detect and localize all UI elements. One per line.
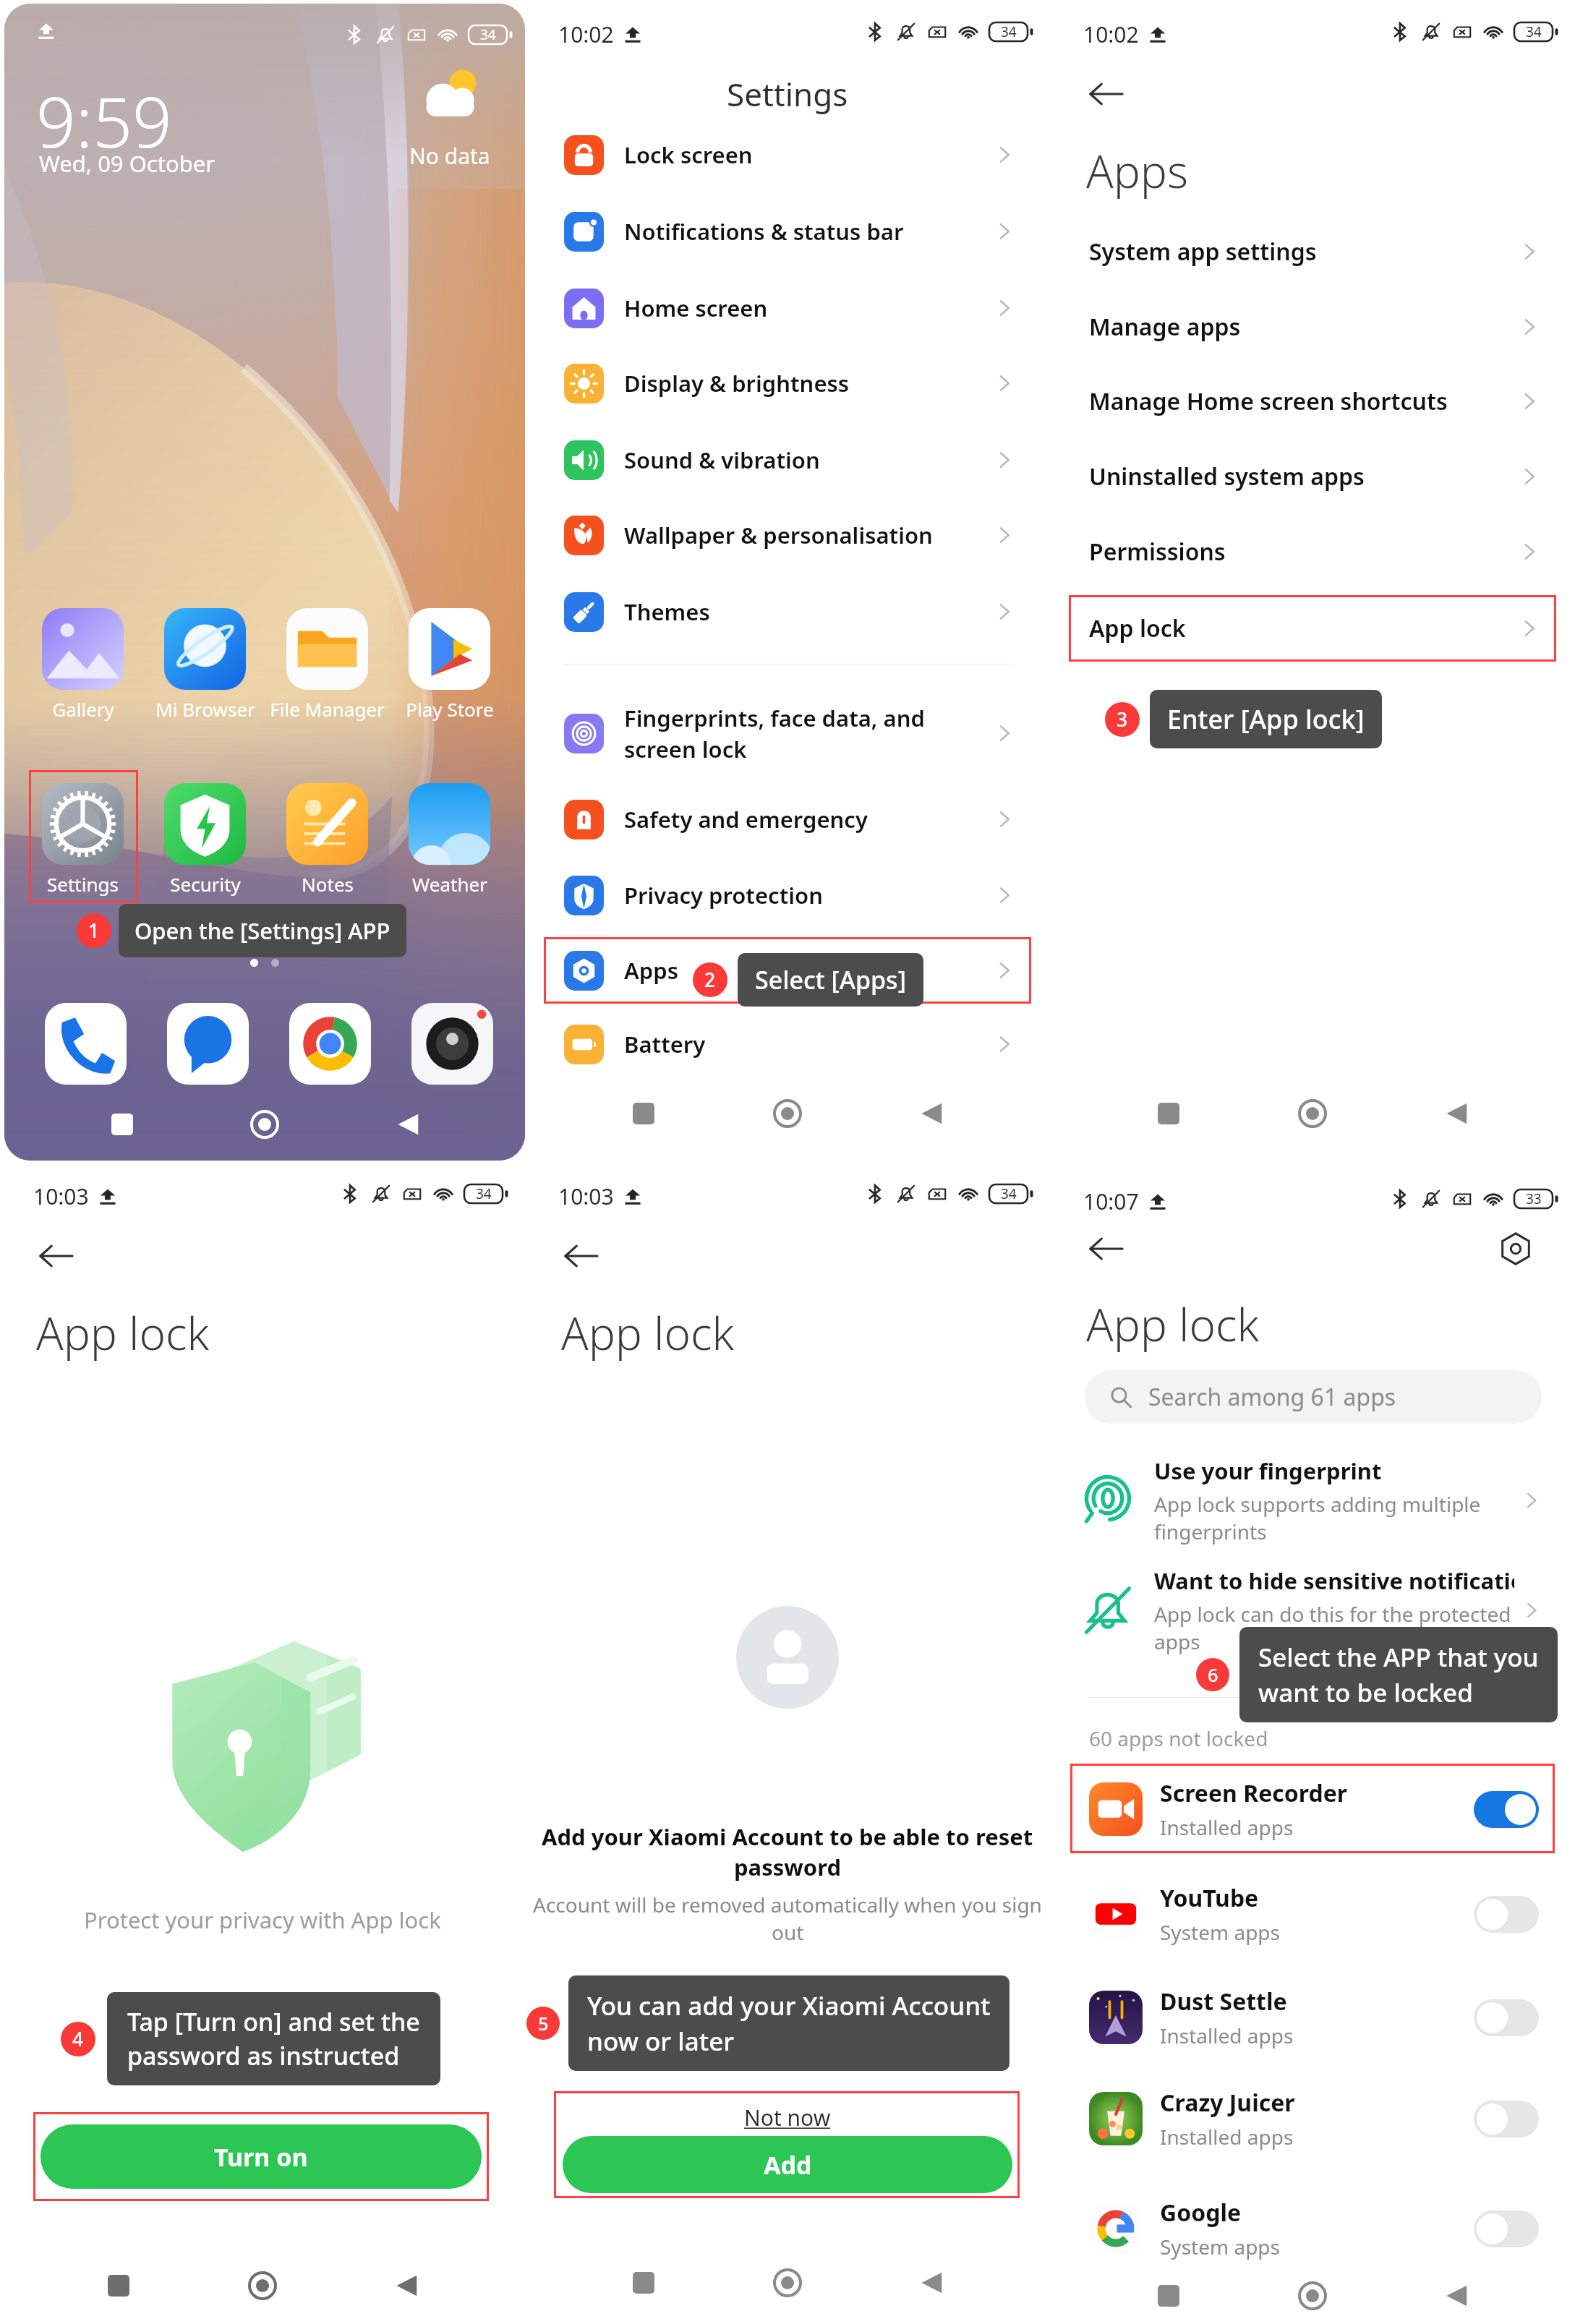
staticText: Protect your privacy with App lock bbox=[84, 1905, 441, 1935]
staticText: Open the [Settings] APP bbox=[135, 915, 390, 946]
staticText: App lock bbox=[36, 1302, 210, 1363]
staticText: 10:07 bbox=[1083, 1187, 1139, 1216]
button[interactable]: Back bbox=[558, 1233, 605, 1279]
button[interactable] bbox=[164, 608, 246, 690]
staticText: Screen Recorder bbox=[1160, 1777, 1348, 1809]
button[interactable]: Turn on bbox=[40, 2124, 482, 2189]
button[interactable]: Want to hide sensitive notification bbox=[1050, 1558, 1575, 1662]
staticText: 9:59 bbox=[36, 73, 172, 168]
button[interactable]: Privacy protection bbox=[525, 862, 1050, 928]
staticText: Add your Xiaomi Account to be able to re… bbox=[542, 1821, 1033, 1852]
staticText: 1 bbox=[88, 918, 100, 944]
button[interactable] bbox=[409, 783, 490, 865]
button[interactable]: Recents bbox=[1143, 1088, 1194, 1139]
staticText: Tap [Turn on] and set the password as in… bbox=[127, 2005, 420, 2072]
staticText: Uninstalled system apps bbox=[1089, 461, 1365, 492]
button[interactable]: Fingerprints, face data, and screen lock bbox=[525, 693, 1050, 774]
staticText: 4 bbox=[72, 2026, 84, 2052]
button[interactable]: Crazy Juicer bbox=[1050, 2074, 1575, 2163]
button[interactable]: Wallpaper & personalisation bbox=[525, 502, 1050, 568]
button[interactable]: Back bbox=[1431, 1088, 1482, 1139]
button[interactable]: Recents bbox=[97, 1099, 148, 1150]
button[interactable]: Toggle Screen Recorder bbox=[1474, 1791, 1539, 1828]
button[interactable]: Toggle Google bbox=[1474, 2210, 1539, 2247]
staticText: Installed apps bbox=[1160, 2123, 1294, 2150]
staticText: You can add your Xiaomi Account now or l… bbox=[587, 1988, 991, 2058]
staticText: Turn on bbox=[214, 2140, 308, 2174]
button[interactable]: Home bbox=[237, 2260, 288, 2311]
button[interactable]: App bbox=[167, 1003, 249, 1085]
button[interactable]: App lock bbox=[1050, 595, 1575, 662]
button[interactable] bbox=[164, 783, 246, 865]
staticText: App lock supports adding multiple finger… bbox=[1154, 1490, 1481, 1545]
button[interactable]: App bbox=[45, 1003, 127, 1085]
button[interactable]: App bbox=[411, 1003, 493, 1085]
button[interactable] bbox=[409, 608, 490, 690]
staticText: 10:03 bbox=[33, 1182, 89, 1211]
button[interactable]: Back bbox=[906, 1088, 957, 1139]
staticText: Installed apps bbox=[1160, 1814, 1294, 1841]
button[interactable]: Back bbox=[1431, 2270, 1482, 2321]
button[interactable]: Back bbox=[381, 2260, 432, 2311]
button[interactable] bbox=[286, 783, 368, 865]
button[interactable]: Not now bbox=[730, 2100, 845, 2135]
button[interactable]: Settings bbox=[1493, 1226, 1539, 1272]
button[interactable]: Home bbox=[762, 2257, 813, 2308]
button[interactable] bbox=[42, 608, 124, 690]
staticText: 60 apps not locked bbox=[1089, 1725, 1268, 1752]
button[interactable]: Battery bbox=[525, 1011, 1050, 1077]
button[interactable]: Back bbox=[1083, 1226, 1130, 1272]
staticText: Crazy Juicer bbox=[1160, 2087, 1295, 2119]
staticText: System apps bbox=[1160, 2233, 1280, 2260]
button[interactable]: Display & brightness bbox=[525, 350, 1050, 416]
staticText: 34 bbox=[1001, 22, 1017, 41]
staticText: 34 bbox=[480, 25, 496, 44]
staticText: Google bbox=[1160, 2197, 1242, 2229]
button[interactable]: Recents bbox=[1143, 2270, 1194, 2321]
button[interactable]: Search among 61 apps bbox=[1085, 1370, 1542, 1424]
button[interactable]: Recents bbox=[93, 2260, 144, 2311]
button[interactable]: Back bbox=[906, 2257, 957, 2308]
button[interactable]: Uninstalled system apps bbox=[1050, 443, 1575, 510]
button[interactable]: Home bbox=[239, 1099, 290, 1150]
staticText: Not now bbox=[744, 2103, 831, 2132]
button[interactable]: Add bbox=[563, 2136, 1012, 2193]
button[interactable]: YouTube bbox=[1050, 1869, 1575, 1959]
button[interactable]: Manage Home screen shortcuts bbox=[1050, 368, 1575, 435]
staticText: 34 bbox=[1526, 22, 1542, 41]
button[interactable]: Recents bbox=[618, 1088, 669, 1139]
button[interactable]: Notifications & status bar bbox=[525, 198, 1050, 265]
button[interactable]: Apps bbox=[525, 937, 1050, 1004]
button[interactable]: Manage apps bbox=[1050, 294, 1575, 360]
button[interactable]: Google bbox=[1050, 2184, 1575, 2273]
button[interactable]: Home bbox=[1287, 2270, 1338, 2321]
button[interactable]: Dust Settle bbox=[1050, 1973, 1575, 2062]
button[interactable]: App bbox=[289, 1003, 371, 1085]
staticText: System apps bbox=[1160, 1918, 1280, 1946]
button[interactable] bbox=[286, 608, 368, 690]
button[interactable]: Back bbox=[383, 1099, 433, 1150]
staticText: 6 bbox=[1208, 1662, 1218, 1687]
button[interactable]: Toggle Dust Settle bbox=[1474, 1999, 1539, 2036]
button[interactable]: Recents bbox=[618, 2257, 669, 2308]
button[interactable]: Toggle YouTube bbox=[1474, 1896, 1539, 1933]
staticText: 2 bbox=[704, 967, 716, 993]
button[interactable]: Use your fingerprint bbox=[1050, 1448, 1575, 1552]
staticText: Wallpaper & personalisation bbox=[624, 520, 933, 550]
button[interactable]: Home bbox=[762, 1088, 813, 1139]
button[interactable]: Home screen bbox=[525, 275, 1050, 341]
button[interactable]: Sound & vibration bbox=[525, 427, 1050, 493]
button[interactable]: Safety and emergency bbox=[525, 786, 1050, 853]
button[interactable] bbox=[42, 783, 124, 865]
staticText: password bbox=[734, 1852, 842, 1882]
button[interactable]: Home bbox=[1287, 1088, 1338, 1139]
button[interactable]: Screen Recorder bbox=[1050, 1764, 1575, 1854]
staticText: Home screen bbox=[624, 293, 768, 323]
button[interactable]: Toggle Crazy Juicer bbox=[1474, 2101, 1539, 2137]
button[interactable]: Back bbox=[1083, 71, 1130, 117]
button[interactable]: Lock screen bbox=[525, 121, 1050, 188]
button[interactable]: Themes bbox=[525, 578, 1050, 645]
button[interactable]: Back bbox=[33, 1233, 80, 1279]
button[interactable]: Permissions bbox=[1050, 518, 1575, 585]
button[interactable]: System app settings bbox=[1050, 218, 1575, 285]
